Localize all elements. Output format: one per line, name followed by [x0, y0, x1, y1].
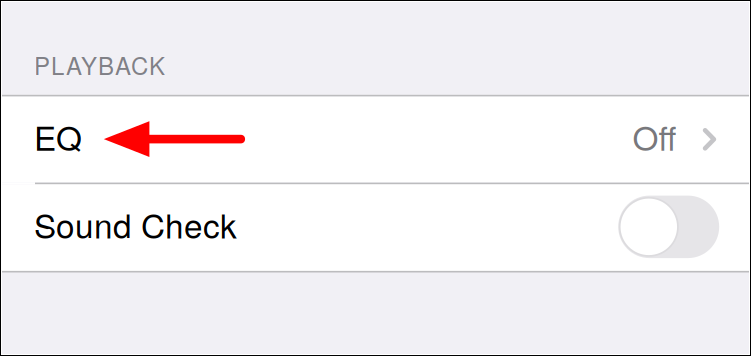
staticText: EQ	[34, 112, 82, 160]
staticText: Sound Check	[34, 200, 237, 248]
button[interactable]: Off	[2, 184, 749, 271]
button[interactable]: Off	[2, 97, 749, 183]
staticText: Off	[633, 112, 677, 160]
staticText: PLAYBACK	[34, 47, 165, 82]
